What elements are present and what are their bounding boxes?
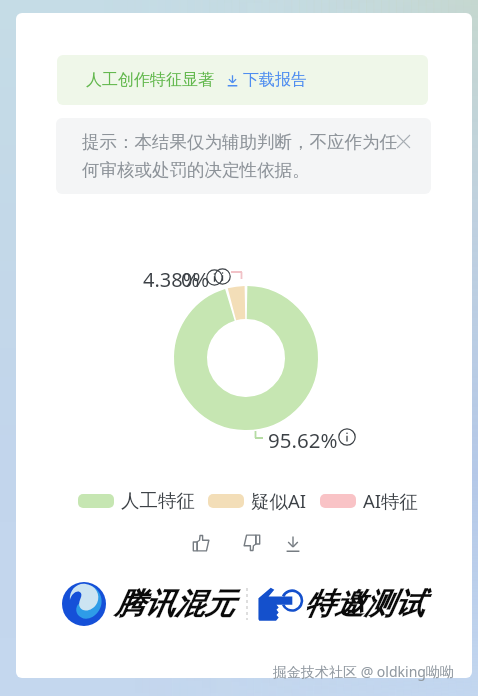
staticText: 腾讯混元 (114, 585, 234, 623)
staticText: 特邀测试 (304, 585, 424, 623)
button[interactable]: Dislike (238, 529, 266, 557)
button[interactable]: Like (187, 529, 215, 557)
staticText: 提示：本结果仅为辅助判断，不应作为任何审核或处罚的决定性依据。 (82, 131, 400, 181)
staticText: 4.38% (143, 266, 200, 293)
staticText: 人工创作特征显著 (86, 70, 214, 90)
staticText: AI特征 (363, 488, 419, 513)
staticText: 人工特征 (121, 489, 195, 512)
button[interactable]: Close (397, 135, 410, 148)
button[interactable]: 人工创作特征显著 (57, 55, 428, 105)
staticText: 疑似AI (251, 488, 307, 513)
staticText: 95.62% (268, 426, 338, 454)
staticText: 0% (181, 266, 210, 293)
staticText: 掘金技术社区 @ oldking呦呦 (273, 662, 454, 681)
staticText: 下载报告 (243, 70, 307, 90)
button[interactable]: Download (279, 530, 307, 558)
